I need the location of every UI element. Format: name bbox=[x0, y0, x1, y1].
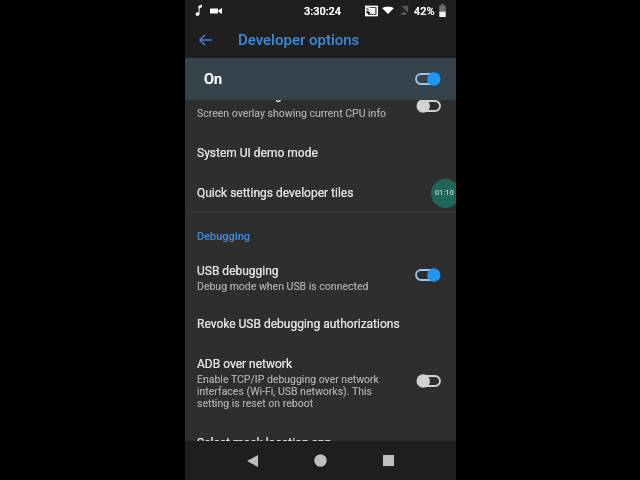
staticText: ADB over network bbox=[197, 357, 292, 371]
button[interactable]: Back bbox=[187, 22, 223, 58]
staticText: 01:10 bbox=[435, 188, 454, 197]
button[interactable]: USB debugging bbox=[185, 264, 456, 292]
button[interactable]: Select mock location app bbox=[185, 428, 456, 458]
button[interactable]: Recents bbox=[366, 441, 410, 480]
staticText: Revoke USB debugging authorizations bbox=[197, 317, 400, 331]
staticText: Debugging bbox=[197, 230, 251, 243]
button[interactable]: Back bbox=[230, 441, 274, 480]
staticText: On bbox=[204, 71, 223, 88]
button[interactable]: Show CPU usage bbox=[185, 88, 456, 119]
staticText: 3:30:24 bbox=[304, 5, 342, 18]
staticText: USB debugging bbox=[197, 264, 279, 278]
staticText: Select mock location app bbox=[197, 436, 332, 450]
button[interactable]: System UI demo mode bbox=[185, 138, 456, 168]
staticText: Screen overlay showing current CPU info bbox=[197, 107, 387, 119]
button[interactable]: Home bbox=[298, 441, 342, 480]
staticText: Enable TCP/IP debugging over network int… bbox=[197, 373, 394, 409]
staticText: Show CPU usage bbox=[197, 88, 289, 102]
button[interactable]: Quick settings developer tiles bbox=[185, 178, 456, 208]
button[interactable]: Revoke USB debugging authorizations bbox=[185, 309, 456, 339]
button[interactable]: On bbox=[185, 58, 456, 100]
staticText: 42% bbox=[414, 5, 435, 18]
staticText: Developer options bbox=[238, 31, 360, 49]
staticText: System UI demo mode bbox=[197, 146, 318, 160]
button[interactable]: ADB over network bbox=[185, 357, 456, 409]
staticText: Quick settings developer tiles bbox=[197, 186, 354, 200]
staticText: Debug mode when USB is connected bbox=[197, 280, 369, 292]
